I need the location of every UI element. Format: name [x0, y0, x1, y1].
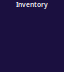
staticText: Inventory — [16, 0, 48, 9]
